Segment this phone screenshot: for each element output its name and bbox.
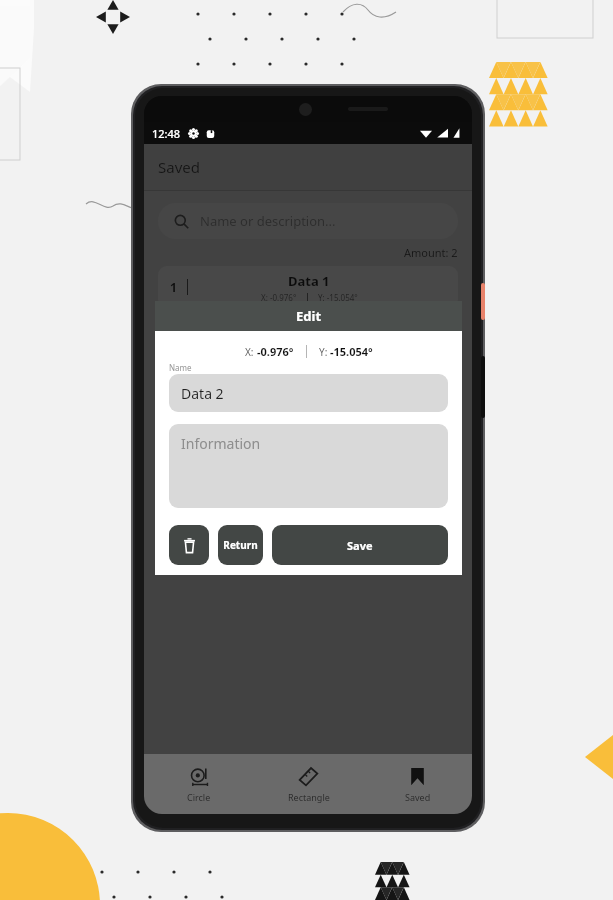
button[interactable]: Data 2	[169, 374, 448, 412]
staticText: -0.976°	[257, 344, 294, 359]
button[interactable]: Saved	[363, 754, 472, 814]
button[interactable]: Information	[169, 424, 448, 508]
staticText: Y:	[319, 345, 330, 359]
staticText: X:	[245, 345, 257, 359]
button[interactable]: 2	[158, 315, 458, 357]
staticText: -15.054°	[330, 344, 373, 359]
staticText: Return	[223, 538, 258, 552]
button[interactable]: Circle	[144, 754, 254, 814]
button[interactable]: Delete	[169, 525, 209, 565]
staticText: Saved	[158, 157, 200, 177]
button[interactable]: Name or description...	[158, 203, 458, 239]
staticText: Edit	[296, 307, 322, 325]
staticText: Y: -15.054°	[318, 341, 358, 352]
staticText: 1	[170, 279, 177, 295]
staticText: Information	[181, 434, 261, 453]
button[interactable]: Rectangle	[254, 754, 363, 814]
staticText: Data 1	[288, 272, 330, 290]
staticText: Data 2	[288, 321, 330, 339]
staticText: Name or description...	[200, 212, 336, 230]
staticText: X: -0.976°	[261, 341, 297, 352]
staticText: Y: -15.054°	[318, 292, 358, 303]
staticText: 2	[170, 328, 177, 344]
staticText: Circle	[187, 791, 211, 803]
button[interactable]: 1	[158, 266, 458, 308]
staticText: Data 2	[181, 384, 224, 403]
button[interactable]: Return	[218, 525, 263, 565]
staticText: Amount: 2	[404, 245, 458, 260]
staticText: Rectangle	[288, 791, 330, 803]
staticText: Save	[347, 538, 373, 553]
staticText: Saved	[405, 791, 431, 803]
staticText: Name	[169, 362, 192, 373]
staticText: X: -0.976°	[261, 292, 297, 303]
staticText: 12:48	[152, 126, 181, 141]
button[interactable]: Save	[272, 525, 448, 565]
